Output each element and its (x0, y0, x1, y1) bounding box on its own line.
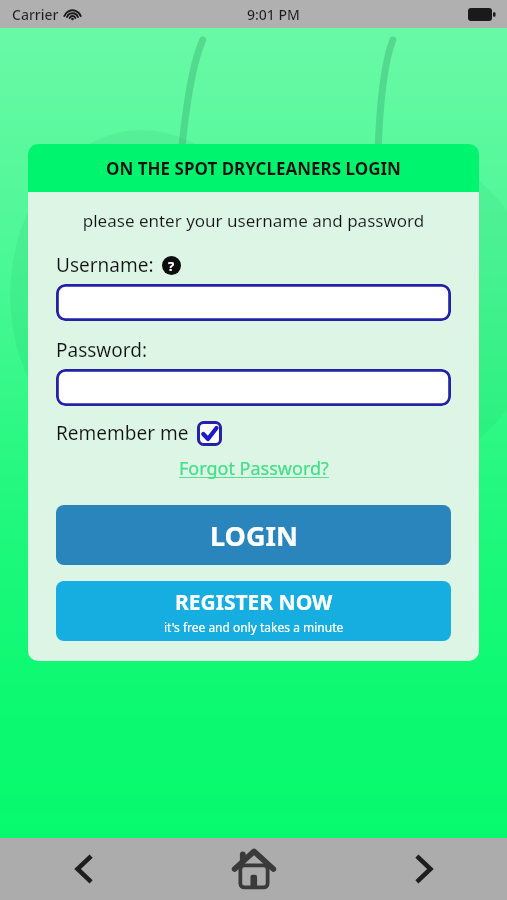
staticText: Password: (56, 337, 148, 363)
button[interactable]: REGISTER NOW (56, 581, 451, 641)
staticText: it's free and only takes a minute (164, 619, 344, 635)
button[interactable] (56, 369, 451, 406)
button[interactable] (56, 284, 451, 321)
staticText: REGISTER NOW (175, 588, 333, 617)
staticText: Remember me (56, 420, 189, 446)
button[interactable]: Forward (338, 838, 507, 900)
button[interactable]: Forgot Password? (179, 456, 329, 481)
staticText: Username: (56, 252, 154, 278)
button[interactable]: Username help (162, 256, 181, 275)
staticText: ON THE SPOT DRYCLEANERS LOGIN (106, 157, 401, 180)
button[interactable]: Back (0, 838, 169, 900)
staticText: please enter your username and password (56, 209, 451, 232)
staticText: 9:01 PM (247, 5, 300, 24)
staticText: Carrier (12, 5, 59, 24)
button[interactable]: LOGIN (56, 505, 451, 565)
staticText: ? (168, 257, 175, 275)
staticText: LOGIN (210, 517, 298, 554)
button[interactable]: Home (169, 838, 338, 900)
button[interactable]: Remember me (56, 420, 222, 446)
